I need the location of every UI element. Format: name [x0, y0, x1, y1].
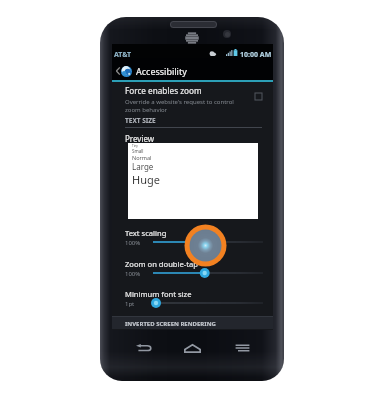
staticText: Normal [132, 154, 152, 161]
button[interactable]: Minimum font size [112, 289, 273, 319]
staticText: Small [132, 148, 144, 154]
staticText: Zoom on double-tap [125, 259, 198, 269]
button[interactable]: Back [125, 336, 162, 360]
button[interactable]: Menu [224, 336, 261, 360]
button[interactable]: Text scaling [112, 228, 273, 258]
staticText: INVERTED SCREEN RENDERING [125, 320, 216, 328]
staticText: Tiny [132, 144, 138, 148]
staticText: Override a website's request to control … [125, 98, 234, 114]
staticText: Minimum font size [125, 289, 192, 299]
button[interactable]: Zoom on double-tap [112, 259, 273, 289]
button[interactable]: Accessibility [112, 58, 273, 80]
staticText: 10:00 AM [240, 50, 272, 60]
staticText: Large [132, 161, 154, 172]
staticText: Huge [132, 172, 160, 187]
staticText: Preview [125, 133, 155, 144]
button[interactable]: Force enables zoom [112, 85, 273, 119]
button[interactable]: Home [174, 336, 211, 360]
staticText: AT&T [114, 50, 132, 60]
staticText: 100% [125, 270, 141, 278]
staticText: 1pt [125, 300, 135, 308]
staticText: TEXT SIZE [125, 116, 156, 125]
staticText: Accessibility [136, 65, 187, 77]
staticText: 100% [125, 239, 141, 247]
staticText: Text scaling [125, 228, 167, 238]
staticText: Force enables zoom [125, 85, 202, 96]
